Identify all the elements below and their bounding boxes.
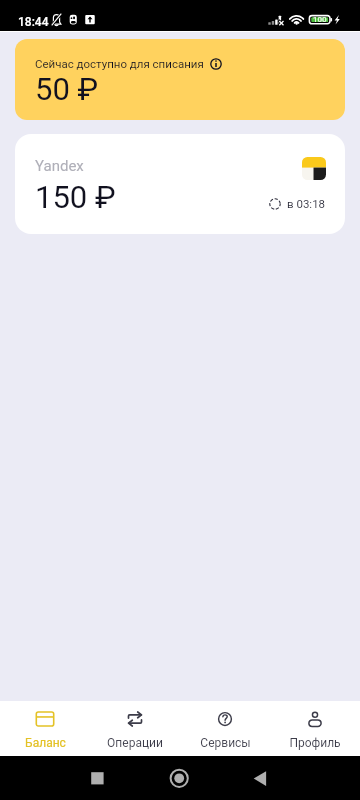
button[interactable]: Главный экран — [151, 756, 207, 800]
staticText: 50 ₽ — [35, 71, 99, 107]
button[interactable]: Назад — [232, 756, 288, 800]
other: Информация — [210, 58, 222, 70]
button[interactable]: Обновить — [269, 197, 326, 210]
staticText: в 03:18 — [287, 197, 326, 210]
staticText: Профиль — [289, 736, 341, 750]
staticText: Операции — [107, 736, 163, 750]
staticText: 150 ₽ — [35, 179, 116, 215]
other: Обновить — [269, 198, 281, 210]
staticText: Сервисы — [200, 736, 251, 750]
staticText: 18:44 — [18, 15, 49, 29]
button[interactable]: Сейчас доступно для списания — [15, 39, 345, 120]
button[interactable]: Сервисы — [180, 701, 270, 756]
button[interactable]: Последние приложения — [70, 756, 126, 800]
staticText: 100 — [313, 15, 327, 24]
staticText: Сейчас доступно для списания — [35, 57, 204, 70]
button[interactable]: Yandex — [15, 134, 345, 234]
staticText: Баланс — [25, 736, 66, 750]
button[interactable]: Баланс — [0, 701, 90, 756]
staticText: Yandex — [35, 157, 84, 175]
button[interactable]: Профиль — [270, 701, 360, 756]
button[interactable]: Операции — [90, 701, 180, 756]
